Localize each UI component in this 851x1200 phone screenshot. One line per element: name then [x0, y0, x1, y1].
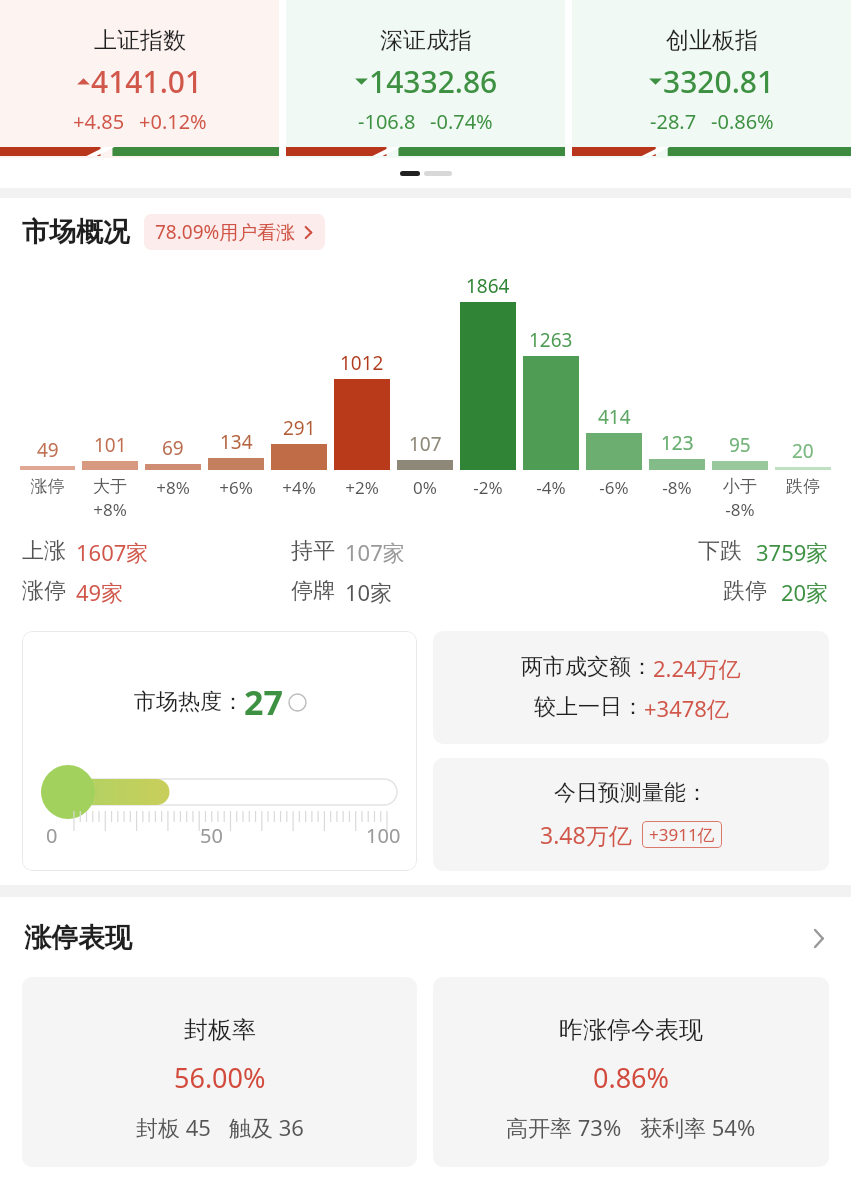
other: 查看更多: [810, 930, 827, 947]
button[interactable]: 78.09%用户看涨: [144, 214, 325, 250]
other: 帮助: [289, 694, 306, 711]
staticText: 10家: [345, 577, 393, 607]
button[interactable]: 两市成交额：: [433, 631, 829, 744]
staticText: 4141.01: [91, 61, 203, 102]
staticText: 0: [46, 822, 58, 849]
staticText: -0.74%: [430, 108, 493, 135]
staticText: 大于 +8%: [82, 476, 138, 521]
staticText: 涨停: [22, 577, 66, 605]
staticText: +8%: [145, 476, 201, 499]
staticText: 两市成交额：: [521, 653, 653, 681]
staticText: +3911亿: [649, 823, 715, 846]
staticText: 20家: [781, 577, 829, 607]
staticText: 20: [792, 438, 814, 464]
staticText: +4%: [271, 476, 327, 499]
staticText: 50: [200, 822, 223, 849]
staticText: 1263: [529, 327, 573, 353]
staticText: -28.7: [650, 108, 697, 135]
staticText: 高开率 73%: [506, 1112, 622, 1142]
staticText: 市场概况: [22, 215, 130, 249]
staticText: +4.85: [73, 108, 125, 135]
staticText: 上证指数: [94, 26, 186, 55]
staticText: 跌停: [775, 476, 831, 497]
staticText: 101: [94, 432, 127, 458]
staticText: 封板 45: [136, 1112, 211, 1142]
staticText: -106.8: [358, 108, 416, 135]
staticText: 0%: [397, 476, 453, 499]
button[interactable]: 昨涨停今表现: [433, 977, 829, 1167]
staticText: 95: [729, 432, 751, 458]
staticText: 触及 36: [229, 1112, 304, 1142]
staticText: 创业板指: [666, 26, 758, 55]
staticText: 停牌: [291, 577, 335, 605]
staticText: 1864: [466, 273, 510, 299]
staticText: -0.86%: [711, 108, 774, 135]
staticText: 封板率: [184, 1015, 256, 1045]
staticText: -8%: [649, 476, 705, 499]
staticText: 3.48万亿: [540, 819, 632, 850]
staticText: 涨停: [20, 476, 75, 497]
staticText: 3759家: [756, 537, 829, 567]
staticText: +3478亿: [644, 693, 729, 723]
button[interactable]: 涨停表现: [0, 921, 851, 955]
staticText: 107: [409, 431, 442, 457]
button[interactable]: 深证成指: [286, 0, 565, 158]
staticText: 持平: [291, 537, 335, 565]
button[interactable]: 今日预测量能：: [433, 758, 829, 871]
staticText: 56.00%: [174, 1059, 266, 1096]
staticText: 今日预测量能：: [554, 779, 708, 807]
staticText: +0.12%: [139, 108, 207, 135]
staticText: 3320.81: [663, 61, 775, 102]
staticText: 涨停表现: [24, 921, 132, 955]
staticText: 昨涨停今表现: [559, 1015, 703, 1045]
staticText: 27: [244, 679, 283, 725]
staticText: 49家: [76, 577, 124, 607]
staticText: 123: [661, 430, 694, 456]
staticText: 深证成指: [380, 26, 472, 55]
staticText: 69: [162, 435, 184, 461]
staticText: +6%: [208, 476, 264, 499]
staticText: -6%: [586, 476, 642, 499]
staticText: 134: [220, 429, 253, 455]
staticText: 下跌: [698, 537, 742, 565]
staticText: +2%: [334, 476, 390, 499]
button[interactable]: 封板率: [22, 977, 417, 1167]
staticText: -4%: [523, 476, 579, 499]
staticText: 107家: [345, 537, 405, 567]
button[interactable]: 市场热度：: [22, 631, 417, 871]
staticText: 1607家: [76, 537, 149, 567]
button[interactable]: 上证指数: [0, 0, 279, 158]
staticText: 跌停: [723, 577, 767, 605]
button[interactable]: 创业板指: [572, 0, 851, 158]
staticText: 414: [598, 404, 631, 430]
staticText: -2%: [460, 476, 516, 499]
staticText: 获利率 54%: [640, 1112, 756, 1142]
staticText: 2.24万亿: [653, 653, 741, 683]
staticText: 100: [366, 822, 401, 849]
staticText: 上涨: [22, 537, 66, 565]
staticText: 市场热度：: [134, 688, 244, 716]
staticText: 49: [37, 437, 59, 463]
staticText: 小于 -8%: [712, 476, 768, 521]
staticText: 14332.86: [369, 61, 498, 102]
staticText: 0.86%: [593, 1059, 670, 1096]
staticText: 较上一日：: [534, 693, 644, 721]
staticText: 291: [283, 415, 316, 441]
staticText: 78.09%用户看涨: [155, 219, 296, 245]
staticText: 1012: [340, 350, 384, 376]
